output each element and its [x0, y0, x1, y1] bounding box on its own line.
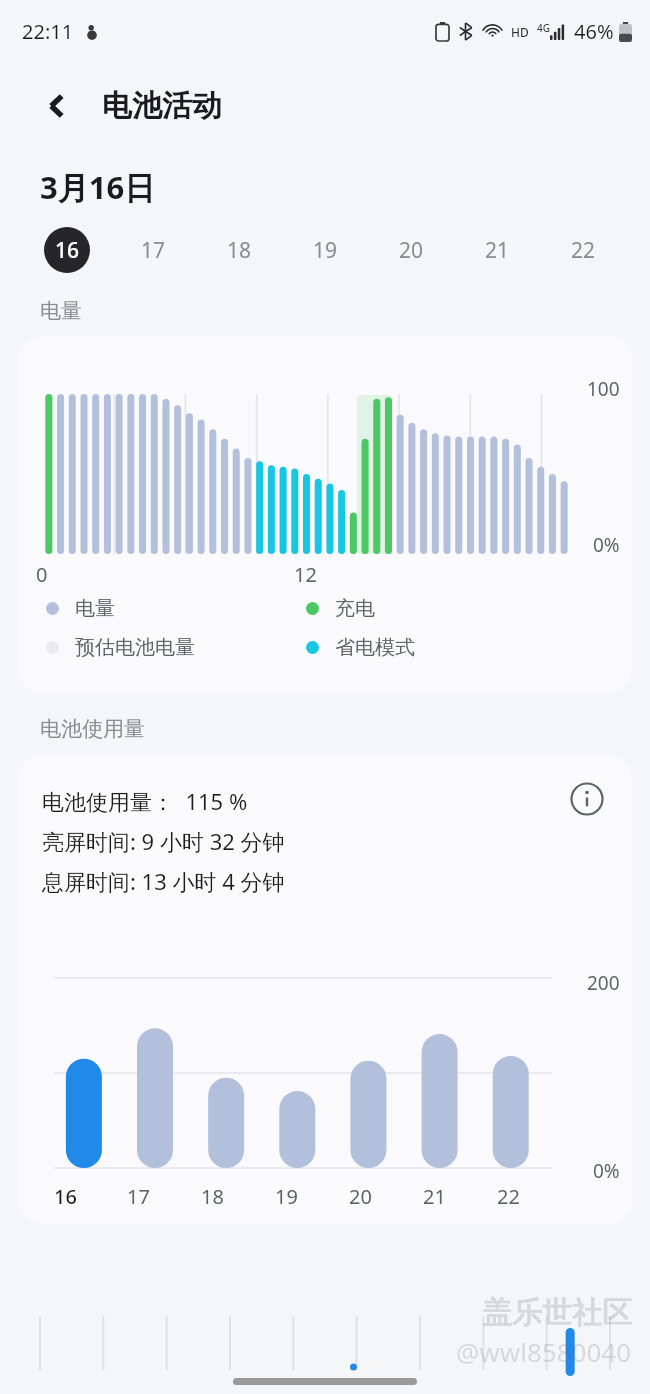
- staticText: 12: [294, 561, 317, 588]
- staticText: 21: [485, 236, 510, 265]
- staticText: @wwl8580040: [456, 1334, 632, 1369]
- button[interactable]: 20: [368, 222, 454, 278]
- staticText: 18: [227, 236, 252, 265]
- button[interactable]: 22: [540, 222, 626, 278]
- staticText: 22:11: [22, 18, 74, 45]
- button[interactable]: 19: [282, 222, 368, 278]
- staticText: 预估电池电量: [75, 635, 195, 660]
- staticText: 16: [54, 1183, 77, 1210]
- staticText: 20: [399, 236, 424, 265]
- staticText: 电量: [75, 596, 115, 621]
- staticText: 17: [141, 236, 166, 265]
- staticText: 20: [349, 1183, 372, 1210]
- staticText: 18: [201, 1183, 224, 1210]
- staticText: 电池活动: [102, 87, 222, 125]
- staticText: 19: [313, 236, 338, 265]
- staticText: 盖乐世社区: [482, 1294, 632, 1332]
- staticText: 电池使用量： 115 %: [42, 786, 248, 816]
- staticText: 亮屏时间: 9 小时 32 分钟: [42, 826, 285, 856]
- staticText: 100: [587, 376, 620, 402]
- button[interactable]: 21: [454, 222, 540, 278]
- staticText: 省电模式: [335, 635, 415, 660]
- staticText: 200: [587, 970, 620, 996]
- staticText: 19: [275, 1183, 298, 1210]
- staticText: 0: [36, 561, 48, 588]
- button[interactable]: Back: [34, 83, 80, 129]
- staticText: 3月16日: [40, 166, 156, 208]
- button[interactable]: 18: [196, 222, 282, 278]
- staticText: 16: [55, 236, 80, 265]
- button[interactable]: 100: [18, 336, 632, 694]
- button[interactable]: 16: [24, 222, 110, 278]
- staticText: 电池使用量: [40, 716, 145, 742]
- staticText: 息屏时间: 13 小时 4 分钟: [42, 866, 285, 896]
- staticText: 46%: [574, 18, 614, 45]
- button[interactable]: 17: [110, 222, 196, 278]
- staticText: 0%: [593, 532, 620, 558]
- button[interactable]: Info: [564, 776, 610, 822]
- staticText: 17: [127, 1183, 150, 1210]
- staticText: 21: [423, 1183, 446, 1210]
- staticText: HD: [511, 24, 529, 40]
- staticText: 0%: [593, 1158, 620, 1184]
- staticText: 22: [571, 236, 596, 265]
- staticText: 4G: [537, 21, 550, 35]
- staticText: 电量: [40, 298, 82, 324]
- staticText: 22: [497, 1183, 520, 1210]
- staticText: 充电: [335, 596, 375, 621]
